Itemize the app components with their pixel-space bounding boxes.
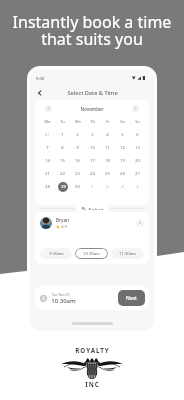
staticText: 11 [105,145,110,151]
button[interactable]: 18 [100,154,115,167]
staticText: 13 [135,145,140,151]
staticText: 26 [120,171,125,177]
button[interactable]: 9 [70,141,85,154]
staticText: 29 [61,184,66,190]
staticText: November [80,106,104,112]
button[interactable]: Previous month [45,105,52,112]
staticText: 3 [91,132,94,138]
button[interactable]: 28 [39,180,55,193]
staticText: Mo [44,119,51,124]
staticText: 22 [60,171,65,177]
staticText: Th [90,119,95,124]
staticText: INC [85,380,100,388]
button[interactable]: Next month [132,105,139,112]
staticText: 14 [45,158,50,164]
button[interactable]: 1 [85,180,100,193]
button[interactable]: 29 [55,180,70,193]
button[interactable]: 30 [70,180,85,193]
staticText: Next [126,295,137,302]
button[interactable]: 23 [70,167,85,180]
button[interactable]: Bryan [35,212,149,264]
button[interactable]: 17 [85,154,100,167]
staticText: 9 [76,145,79,151]
staticText: 2 [106,184,109,190]
staticText: Sa [120,119,125,124]
staticText: 4.9 [61,224,67,229]
staticText: 19 [120,158,125,164]
staticText: 1 [61,132,64,138]
staticText: Su [135,119,140,124]
button[interactable]: 27 [130,167,145,180]
staticText: Instantly book a time that suits you [0,11,184,50]
staticText: Tu [60,119,65,124]
staticText: 10 [90,145,95,151]
button[interactable]: 10 [85,141,100,154]
button[interactable]: 5 [115,128,130,141]
button[interactable]: 12 [115,141,130,154]
button[interactable]: 19 [115,154,130,167]
staticText: 8 [61,145,64,151]
staticText: 23 [75,171,80,177]
staticText: 31 [45,132,50,138]
button[interactable]: 25 [100,167,115,180]
staticText: 10.30am [51,297,76,305]
staticText: Select Date & Time [67,89,118,97]
staticText: 15 [60,158,65,164]
staticText: Fr [106,119,110,124]
staticText: 11.30am [119,251,136,257]
staticText: 25 [105,171,110,177]
staticText: 7 [46,145,49,151]
button[interactable]: 13 [130,141,145,154]
button[interactable]: 3 [115,180,130,193]
button[interactable]: 24 [85,167,100,180]
staticText: 1 [91,184,94,190]
button[interactable]: 9.30am [40,248,72,259]
button[interactable]: 6 [130,128,145,141]
staticText: 12 [120,145,125,151]
button[interactable]: Back [33,86,47,99]
staticText: ROYALTY [75,346,110,354]
button[interactable]: 26 [115,167,130,180]
button[interactable]: 2 [100,180,115,193]
staticText: Tue Nov 29 [51,292,70,297]
staticText: 4 [136,184,139,190]
staticText: Earliest [88,207,104,210]
staticText: 5 [121,132,124,138]
button[interactable]: 11 [100,141,115,154]
staticText: 10.30am [83,251,100,257]
button[interactable]: 8 [55,141,70,154]
staticText: 30 [75,184,80,190]
button[interactable]: 1 [55,128,70,141]
button[interactable]: 3 [85,128,100,141]
staticText: 20 [135,158,140,164]
staticText: 18 [105,158,110,164]
button[interactable]: 11.30am [111,248,144,259]
staticText: 16 [75,158,80,164]
staticText: 2 [76,132,79,138]
staticText: Bryan [56,217,69,223]
staticText: 17 [90,158,95,164]
staticText: 27 [135,171,140,177]
button[interactable]: 14 [39,154,55,167]
button[interactable]: 10.30am [75,248,108,259]
button[interactable]: 16 [70,154,85,167]
button[interactable]: 31 [39,128,55,141]
button[interactable]: 7 [39,141,55,154]
button[interactable]: Earliest [76,205,109,212]
staticText: We [75,119,81,124]
button[interactable]: 20 [130,154,145,167]
staticText: 28 [45,184,50,190]
button[interactable]: 4 [130,180,145,193]
button[interactable]: 15 [55,154,70,167]
staticText: 21 [45,171,50,177]
button[interactable]: 21 [39,167,55,180]
button[interactable]: Next [118,290,145,306]
staticText: 3 [121,184,124,190]
button[interactable]: 2 [70,128,85,141]
button[interactable]: 22 [55,167,70,180]
button[interactable]: 4 [100,128,115,141]
button[interactable]: Profile [136,219,144,227]
staticText: 9:00 [36,76,44,81]
staticText: 9.30am [49,251,64,257]
staticText: 4 [106,132,109,138]
